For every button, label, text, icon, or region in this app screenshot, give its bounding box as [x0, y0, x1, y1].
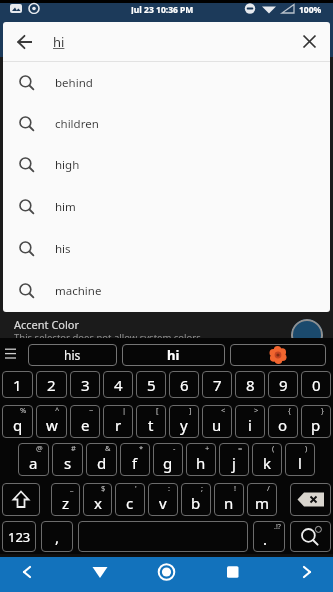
button[interactable]: % — [2, 405, 33, 438]
button[interactable]: ! — [214, 483, 244, 516]
button[interactable]: machine — [3, 270, 330, 312]
staticText: ^ — [55, 405, 60, 415]
button[interactable]: hi — [122, 344, 225, 366]
staticText: 8 — [246, 375, 255, 395]
staticText: m — [255, 493, 270, 513]
staticText: r — [115, 415, 122, 435]
button[interactable] — [78, 521, 248, 552]
button[interactable]: 9 — [268, 371, 298, 398]
button[interactable]: 7 — [202, 371, 232, 398]
button[interactable]: / — [247, 483, 277, 516]
staticText: . — [263, 529, 268, 549]
staticText: Jul 23 10:36 PM — [131, 4, 194, 15]
staticText: c — [126, 493, 134, 513]
button[interactable] — [0, 557, 111, 592]
button[interactable]: high — [3, 144, 330, 186]
staticText: _ — [70, 483, 74, 493]
button[interactable] — [290, 521, 331, 552]
staticText: | — [122, 405, 127, 415]
button[interactable] — [3, 22, 47, 61]
button[interactable]: behind — [3, 62, 330, 103]
button[interactable]: 3 — [70, 371, 100, 398]
button[interactable]: & — [86, 443, 117, 476]
staticText: s — [64, 453, 72, 473]
staticText: ] — [189, 405, 192, 415]
button[interactable]: 1 — [2, 371, 33, 398]
button[interactable]: * — [120, 443, 150, 476]
staticText: ' — [135, 483, 137, 493]
staticText: ~ — [89, 405, 94, 415]
button[interactable]: . — [253, 521, 285, 552]
button[interactable] — [0, 338, 24, 369]
staticText: # — [71, 443, 76, 453]
button[interactable]: ; — [181, 483, 211, 516]
staticText: @ — [36, 443, 43, 453]
button[interactable]: 6 — [169, 371, 199, 398]
button[interactable]: him — [3, 186, 330, 228]
button[interactable]: : — [148, 483, 178, 516]
button[interactable]: + — [186, 443, 216, 476]
button[interactable]: > — [235, 405, 265, 438]
button[interactable]: 5 — [136, 371, 166, 398]
button[interactable]: | — [103, 405, 133, 438]
staticText: [ — [156, 405, 159, 415]
button[interactable]: hi — [3, 22, 330, 61]
staticText: k — [263, 453, 272, 473]
staticText: 6 — [180, 375, 189, 395]
button[interactable]: = — [219, 443, 249, 476]
button[interactable]: { — [268, 405, 298, 438]
staticText: ( — [272, 443, 275, 453]
button[interactable]: < — [202, 405, 232, 438]
staticText: 7 — [213, 375, 222, 395]
staticText: j — [232, 453, 236, 473]
button[interactable]: ~ — [70, 405, 100, 438]
staticText: ; — [201, 483, 204, 493]
button[interactable]: his — [28, 344, 117, 366]
staticText: g — [163, 453, 173, 473]
button[interactable]: ^ — [36, 405, 67, 438]
button[interactable] — [222, 557, 333, 592]
button[interactable]: , — [41, 521, 73, 552]
button[interactable]: } — [301, 405, 331, 438]
button[interactable] — [291, 319, 323, 338]
button[interactable]: [ — [136, 405, 166, 438]
staticText: machine — [55, 283, 102, 299]
staticText: z — [62, 493, 70, 513]
button[interactable]: children — [3, 103, 330, 144]
staticText: 1 — [13, 375, 22, 395]
staticText: 0 — [312, 375, 321, 395]
staticText: b — [191, 493, 201, 513]
staticText: - — [173, 443, 176, 453]
button[interactable] — [230, 344, 326, 366]
button[interactable]: - — [153, 443, 183, 476]
staticText: him — [55, 199, 76, 215]
staticText: t — [148, 415, 154, 435]
button[interactable] — [288, 22, 330, 61]
staticText: hi — [53, 33, 65, 51]
button[interactable]: 2 — [36, 371, 67, 398]
button[interactable]: 8 — [235, 371, 265, 398]
button[interactable]: 0 — [301, 371, 331, 398]
button[interactable]: ( — [252, 443, 282, 476]
button[interactable] — [2, 483, 40, 516]
button[interactable] — [290, 483, 331, 516]
staticText: l — [298, 453, 302, 473]
button[interactable]: # — [52, 443, 83, 476]
button[interactable]: 123 — [2, 521, 36, 552]
button[interactable] — [111, 557, 222, 592]
button[interactable]: his — [3, 228, 330, 270]
staticText: x — [94, 493, 102, 513]
staticText: his — [55, 241, 71, 257]
button[interactable]: ' — [115, 483, 145, 516]
staticText: + — [205, 443, 210, 453]
button[interactable]: ] — [169, 405, 199, 438]
button[interactable]: @ — [18, 443, 49, 476]
staticText: his — [64, 347, 81, 363]
button[interactable]: ) — [285, 443, 315, 476]
staticText: ! — [234, 483, 237, 493]
button[interactable]: $ — [83, 483, 112, 516]
staticText: q — [13, 415, 23, 435]
staticText: 2 — [47, 375, 56, 395]
button[interactable]: _ — [51, 483, 80, 516]
button[interactable]: 4 — [103, 371, 133, 398]
